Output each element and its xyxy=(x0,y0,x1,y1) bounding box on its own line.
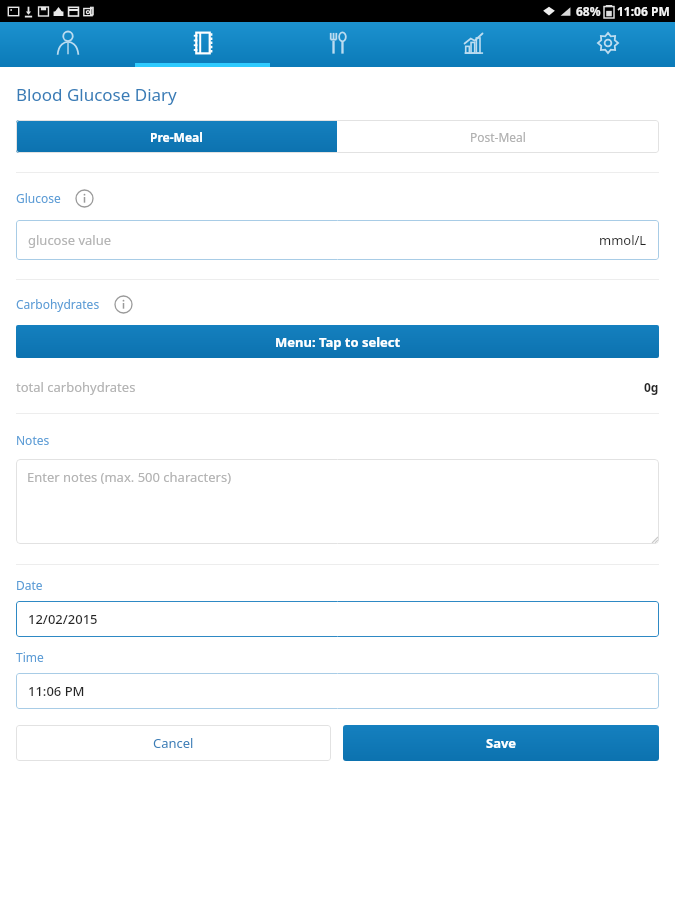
staticText: Enter notes (max. 500 characters) xyxy=(27,468,232,486)
staticText: mmol/L xyxy=(599,231,647,249)
button[interactable]: Post-Meal xyxy=(337,120,659,153)
staticText: Blood Glucose Diary xyxy=(16,83,177,106)
button[interactable]: Select date xyxy=(16,601,659,637)
staticText: total carbohydrates xyxy=(16,378,136,396)
staticText: 11:06 PM xyxy=(28,682,85,700)
button[interactable]: Cancel xyxy=(16,725,331,761)
staticText: Post-Meal xyxy=(470,129,526,145)
staticText: Pre-Meal xyxy=(150,129,203,145)
button[interactable]: Save xyxy=(343,725,659,761)
staticText: Time xyxy=(16,649,44,665)
button[interactable]: Statistics xyxy=(405,22,540,67)
button[interactable]: Select time xyxy=(16,673,659,709)
button[interactable]: Settings xyxy=(540,22,675,67)
button[interactable]: Pre-Meal xyxy=(16,120,337,153)
staticText: Glucose xyxy=(16,190,61,206)
button[interactable]: Meals xyxy=(270,22,405,67)
staticText: 12/02/2015 xyxy=(28,610,98,628)
button[interactable]: Diary xyxy=(135,22,270,67)
staticText: Cancel xyxy=(153,734,194,752)
button[interactable]: Carbohydrates information xyxy=(112,293,134,315)
button[interactable]: Glucose information xyxy=(73,187,95,209)
staticText: Date xyxy=(16,577,43,593)
staticText: Save xyxy=(486,734,517,752)
staticText: 11:06 PM xyxy=(617,3,670,19)
staticText: 0g xyxy=(644,379,659,395)
button[interactable]: glucose value xyxy=(16,220,659,260)
staticText: Notes xyxy=(16,432,50,448)
staticText: Menu: Tap to select xyxy=(275,333,401,351)
staticText: glucose value xyxy=(28,231,112,249)
staticText: Carbohydrates xyxy=(16,296,100,312)
button[interactable]: Patient xyxy=(0,22,135,67)
button[interactable]: Menu: Tap to select xyxy=(16,325,659,358)
button[interactable]: Enter notes (max. 500 characters) xyxy=(16,459,659,544)
staticText: 68% xyxy=(576,3,601,19)
